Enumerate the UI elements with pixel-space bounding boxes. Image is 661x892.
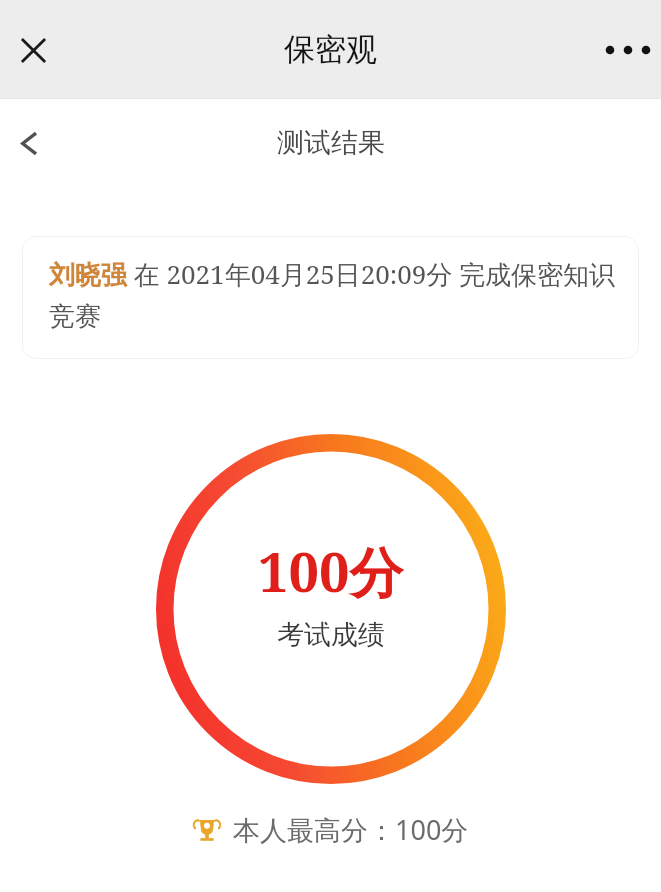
button[interactable]: More options: [599, 21, 657, 79]
staticText: 100分: [258, 534, 404, 608]
staticText: 保密观: [284, 30, 377, 69]
button[interactable]: 刘晓强 在 2021年04月25日20:09分 完成保密知识竞赛: [22, 236, 639, 359]
staticText: 测试结果: [277, 126, 385, 160]
staticText: 刘晓强 在 2021年04月25日20:09分 完成保密知识竞赛: [49, 256, 621, 333]
staticText: 考试成绩: [277, 618, 385, 652]
button[interactable]: 本人最高分：100分: [0, 811, 661, 848]
button[interactable]: Close: [6, 23, 60, 77]
button[interactable]: Back: [3, 116, 57, 170]
staticText: 本人最高分：100分: [233, 811, 469, 848]
